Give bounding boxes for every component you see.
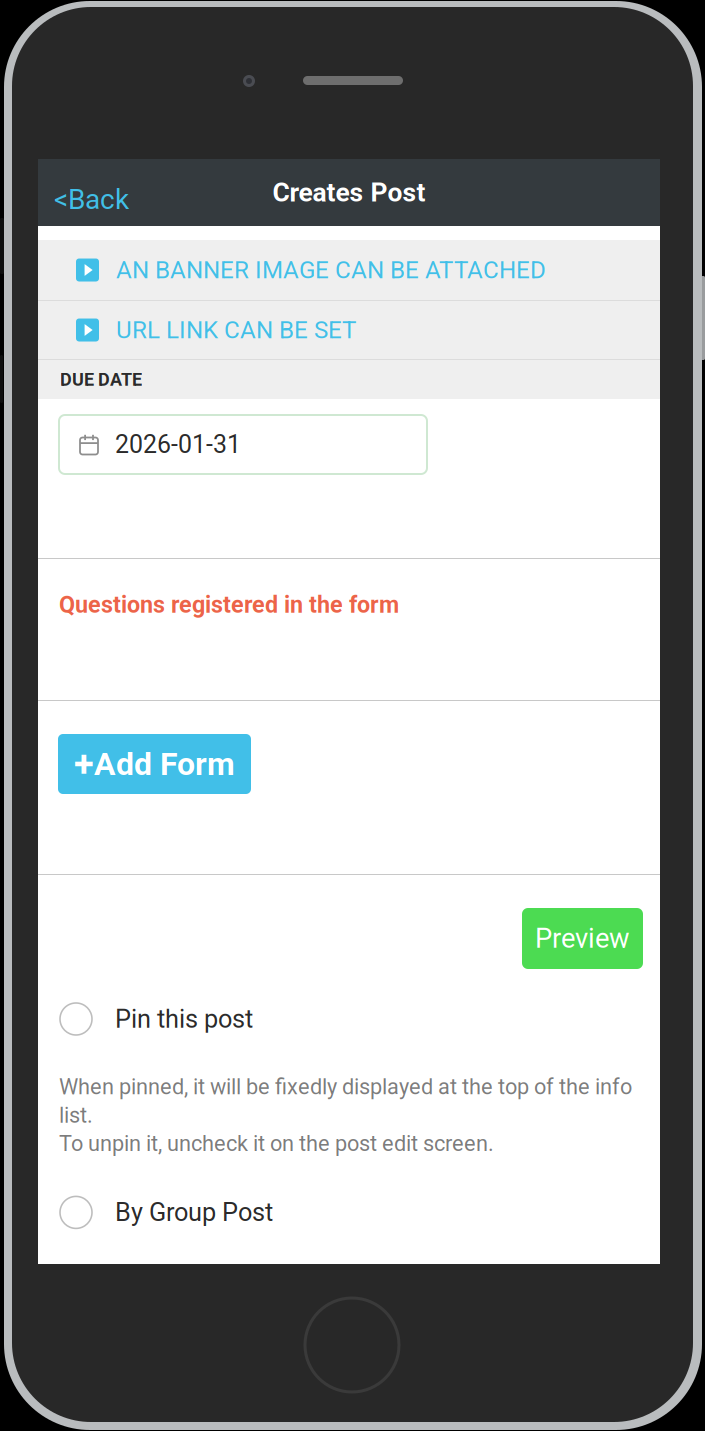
staticText: Creates Post xyxy=(272,177,425,208)
staticText: Add Form xyxy=(94,745,235,783)
button[interactable]: AN BANNER IMAGE CAN BE ATTACHED xyxy=(38,240,660,300)
button[interactable]: URL LINK CAN BE SET xyxy=(38,301,660,359)
button[interactable]: Preview xyxy=(522,908,643,969)
button[interactable]: <Back xyxy=(38,159,149,226)
staticText: Questions registered in the form xyxy=(59,591,399,618)
button[interactable]: 2026-01-31 xyxy=(59,415,427,474)
staticText: URL LINK CAN BE SET xyxy=(116,316,356,344)
staticText: list. xyxy=(59,1102,93,1128)
staticText: 2026-01-31 xyxy=(115,430,241,459)
staticText: <Back xyxy=(54,183,129,216)
staticText: When pinned, it will be fixedly displaye… xyxy=(59,1074,632,1099)
button[interactable]: + xyxy=(58,734,251,794)
staticText: To unpin it, uncheck it on the post edit… xyxy=(59,1131,494,1156)
staticText: + xyxy=(74,743,94,785)
button[interactable]: Pin this post xyxy=(38,995,660,1043)
staticText: Pin this post xyxy=(115,1004,253,1034)
staticText: By Group Post xyxy=(115,1198,273,1227)
staticText: DUE DATE xyxy=(60,369,142,390)
staticText: AN BANNER IMAGE CAN BE ATTACHED xyxy=(116,256,546,284)
staticText: Preview xyxy=(535,922,630,954)
button[interactable]: By Group Post xyxy=(38,1188,660,1236)
